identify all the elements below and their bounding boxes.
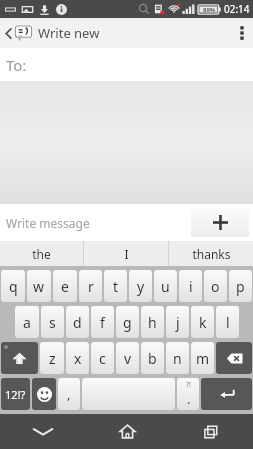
button[interactable]: k	[191, 306, 214, 338]
button[interactable]: d	[66, 306, 89, 338]
staticText: h	[148, 313, 157, 332]
staticText: x	[74, 349, 82, 368]
staticText: g	[123, 313, 132, 332]
button[interactable]: j	[166, 306, 189, 338]
button[interactable]: i	[179, 270, 202, 302]
staticText: To:	[6, 55, 27, 75]
button[interactable]: h	[141, 306, 164, 338]
staticText: j	[176, 313, 180, 332]
button[interactable]: Recent apps	[169, 414, 253, 449]
button[interactable]: I	[84, 241, 168, 266]
staticText: i	[189, 277, 193, 296]
staticText: t	[113, 277, 119, 296]
staticText: s	[49, 313, 56, 332]
staticText: f	[100, 313, 105, 332]
button[interactable]	[82, 378, 175, 410]
staticText: Write message	[6, 215, 90, 231]
staticText: 89%	[203, 6, 216, 14]
button[interactable]: Back	[0, 20, 104, 46]
staticText: b	[148, 349, 157, 368]
staticText: 12!?	[5, 387, 26, 402]
staticText: ?!	[186, 380, 191, 390]
button[interactable]: ?!	[177, 378, 199, 410]
button[interactable]: f	[91, 306, 114, 338]
staticText: e	[61, 277, 69, 296]
staticText: k	[199, 313, 207, 332]
button[interactable]: Emoji	[32, 378, 56, 410]
staticText: c	[99, 349, 106, 368]
staticText: v	[124, 349, 132, 368]
button[interactable]: n	[166, 342, 189, 374]
button[interactable]: Hide keyboard	[0, 414, 85, 449]
staticText: .	[187, 390, 191, 408]
button[interactable]: c	[91, 342, 114, 374]
staticText: the	[32, 246, 51, 262]
staticText: thanks	[192, 246, 231, 262]
staticText: r	[88, 277, 94, 296]
button[interactable]: a	[15, 306, 39, 338]
button[interactable]: Symbols	[1, 378, 30, 410]
staticText: I	[124, 246, 129, 262]
button[interactable]: w	[27, 270, 51, 302]
staticText: q	[9, 277, 18, 296]
button[interactable]: More options	[231, 18, 253, 48]
button[interactable]: l	[216, 306, 239, 338]
button[interactable]: thanks	[169, 241, 253, 266]
button[interactable]: q	[1, 270, 25, 302]
button[interactable]: Home	[85, 414, 169, 449]
button[interactable]: p	[229, 270, 252, 302]
button[interactable]: v	[116, 342, 139, 374]
button[interactable]: x	[66, 342, 89, 374]
button[interactable]: ,	[58, 378, 80, 410]
button[interactable]: b	[141, 342, 164, 374]
staticText: d	[73, 313, 82, 332]
staticText: y	[137, 277, 145, 296]
button[interactable]: the	[0, 241, 83, 266]
staticText: u	[161, 277, 170, 296]
button[interactable]: r	[79, 270, 102, 302]
button[interactable]: To:	[0, 48, 253, 81]
staticText: l	[226, 313, 230, 332]
staticText: a	[23, 313, 31, 332]
staticText: w	[33, 277, 45, 296]
button[interactable]: o	[204, 270, 227, 302]
button[interactable]: e	[53, 270, 77, 302]
button[interactable]: t	[104, 270, 127, 302]
button[interactable]: Enter	[201, 378, 252, 410]
button[interactable]: m	[191, 342, 214, 374]
staticText: m	[196, 349, 210, 368]
staticText: p	[236, 277, 245, 296]
button[interactable]: z	[40, 342, 64, 374]
button[interactable]: y	[129, 270, 152, 302]
staticText: z	[49, 349, 56, 368]
button[interactable]: u	[154, 270, 177, 302]
staticText: n	[173, 349, 182, 368]
button[interactable]: s	[41, 306, 64, 338]
staticText: Write new	[38, 24, 100, 42]
staticText: ,	[67, 385, 71, 403]
button[interactable]: Backspace	[216, 342, 252, 374]
button[interactable]: Shift	[1, 342, 38, 374]
button[interactable]: g	[116, 306, 139, 338]
staticText: o	[211, 277, 220, 296]
button[interactable]: Add attachment	[191, 208, 249, 237]
staticText: 02:14	[224, 2, 250, 16]
